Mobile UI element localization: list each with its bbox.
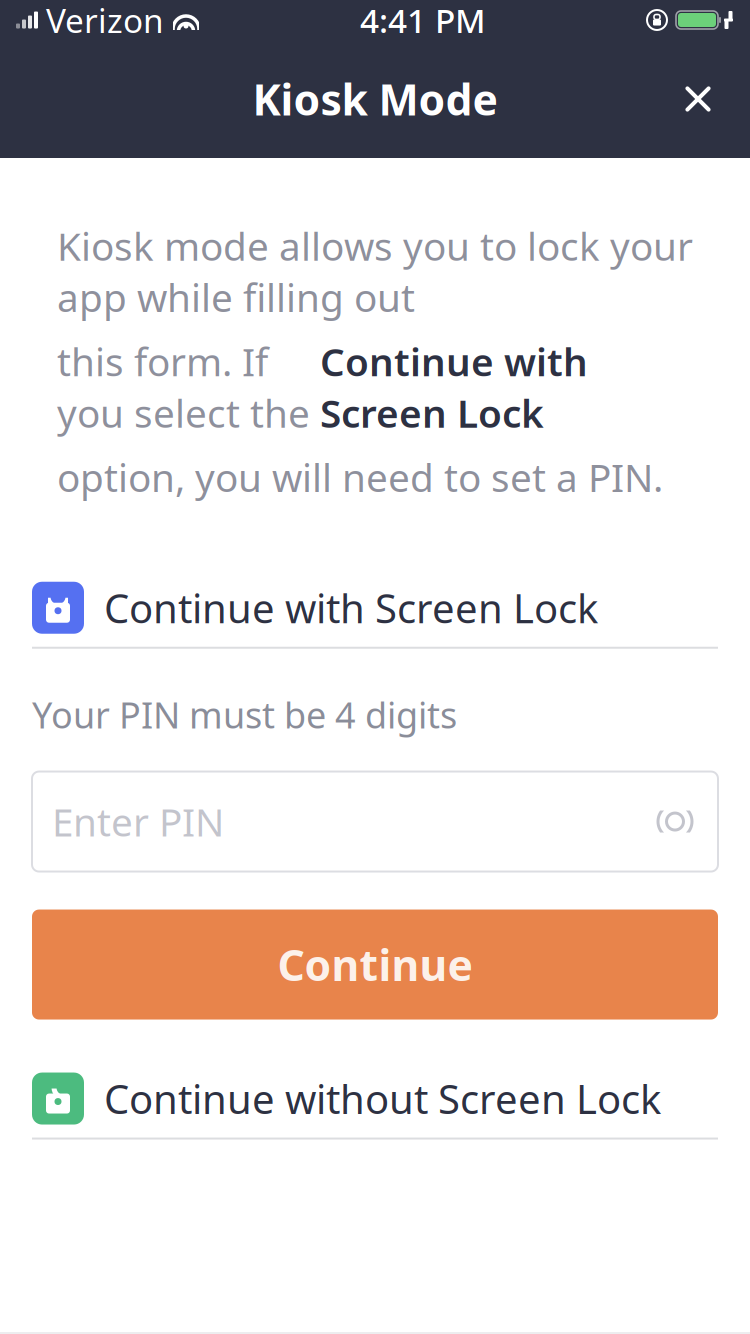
staticText: Continue without Screen Lock [104,1072,661,1125]
staticText: 4:41 PM [360,0,486,42]
button[interactable]: Continue with Screen Lock [0,569,750,647]
staticText: option, you will need to set a PIN. [57,451,663,503]
staticText: Continue [277,936,472,993]
staticText: Kiosk mode allows you to lock your app w… [57,220,693,323]
staticText: Your PIN must be 4 digits [32,691,457,738]
button[interactable]: Show PIN [640,786,710,856]
staticText: Enter PIN [52,796,224,847]
staticText: Verizon [46,0,164,42]
staticText: Continue with Screen Lock [104,581,598,634]
staticText: Kiosk Mode [252,71,497,127]
button[interactable]: Continue [32,909,718,1019]
staticText: this form. If you select the [57,336,320,438]
button[interactable]: Close [668,69,728,129]
staticText: Continue with Screen Lock [320,336,588,438]
button[interactable]: Continue without Screen Lock [0,1059,750,1137]
